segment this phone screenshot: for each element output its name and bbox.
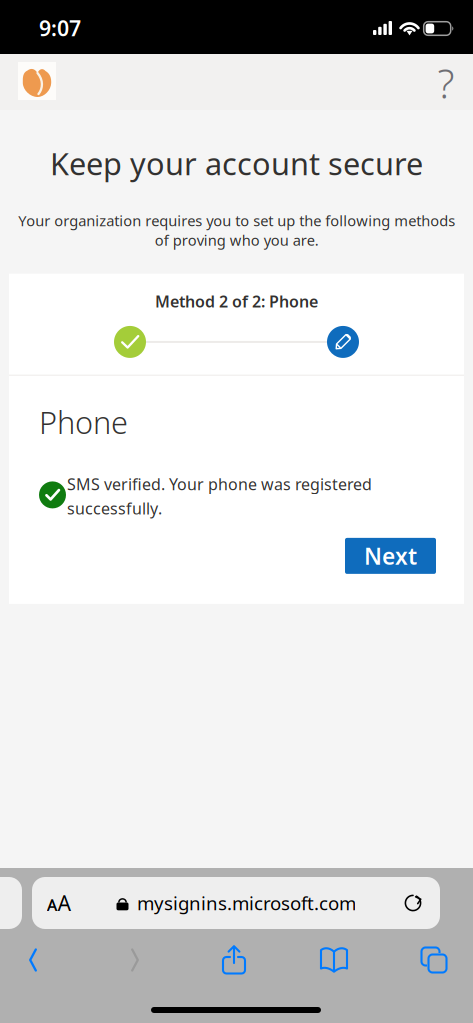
button[interactable]: ᴀA — [32, 877, 440, 929]
staticText: ? — [437, 56, 454, 109]
button[interactable]: Back — [10, 940, 56, 980]
staticText: Your organization requires you to set up… — [18, 211, 455, 250]
staticText: successfully. — [67, 498, 162, 519]
button[interactable]: Next — [345, 538, 436, 574]
button[interactable]: Tabs — [411, 940, 457, 980]
staticText: Method 2 of 2: Phone — [155, 291, 318, 312]
staticText: SMS verified. Your phone was registered — [67, 473, 372, 495]
button[interactable]: Help — [431, 65, 461, 101]
staticText: 9:07 — [39, 14, 81, 42]
staticText: Phone — [39, 402, 128, 442]
button[interactable]: Forward — [112, 940, 158, 980]
button[interactable]: Share — [211, 940, 257, 980]
staticText: Next — [364, 541, 417, 571]
staticText: mysignins.microsoft.com — [137, 891, 356, 915]
staticText: ᴀA — [46, 889, 71, 917]
staticText: Keep your account secure — [50, 143, 423, 184]
button[interactable]: Bookmarks — [311, 940, 357, 980]
